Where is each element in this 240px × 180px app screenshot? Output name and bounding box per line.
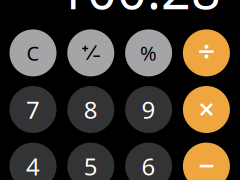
button[interactable]: 4 <box>9 143 56 180</box>
staticText: 7 <box>26 94 40 125</box>
button[interactable]: 6 <box>125 143 172 180</box>
staticText: C <box>26 40 39 66</box>
button[interactable]: % <box>125 29 172 76</box>
button[interactable]: Subtract <box>183 143 230 180</box>
button[interactable]: 8 <box>67 86 114 133</box>
button[interactable]: Plus Minus <box>67 29 114 76</box>
staticText: 8 <box>84 94 98 125</box>
button[interactable]: Divide <box>183 29 230 76</box>
staticText: 9 <box>142 94 156 125</box>
button[interactable]: 7 <box>9 86 56 133</box>
staticText: 4 <box>26 150 40 180</box>
button[interactable]: Multiply <box>183 86 230 133</box>
button[interactable]: C <box>9 29 56 76</box>
staticText: 5 <box>84 150 98 180</box>
staticText: 6 <box>142 150 156 180</box>
button[interactable]: 5 <box>67 143 114 180</box>
staticText: 100.28 <box>57 0 221 24</box>
button[interactable]: 9 <box>125 86 172 133</box>
staticText: % <box>140 40 157 66</box>
